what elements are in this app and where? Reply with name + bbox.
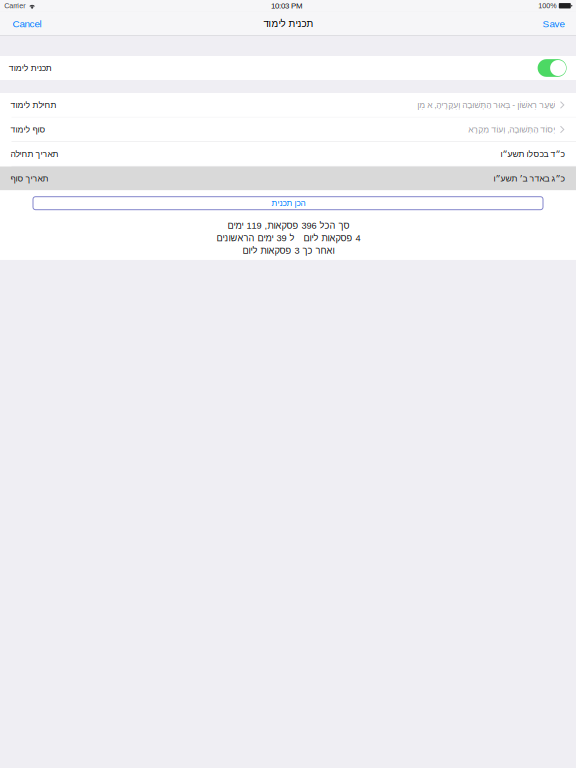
button[interactable]: סוף לימוד — [0, 117, 576, 141]
staticText: Carrier — [4, 2, 25, 10]
staticText: סוף לימוד — [10, 125, 45, 134]
staticText: הכן תכנית — [271, 199, 305, 208]
button[interactable]: תחילת לימוד — [0, 93, 576, 117]
button[interactable]: הכן תכנית — [0, 190, 576, 214]
button[interactable]: Cancel — [0, 11, 54, 36]
staticText: ואחר כך 3 פסקאות ליום — [242, 245, 334, 256]
staticText: Save — [542, 18, 564, 29]
staticText: כ״ג באדר ב׳ תשע״ו — [493, 174, 564, 183]
staticText: Cancel — [12, 18, 41, 29]
staticText: 100% — [538, 2, 556, 10]
staticText: יְסוֹד הַתְּשׁוּבָה, וְעוֹד מִקְרָא — [468, 125, 555, 134]
staticText: שַׁעַר רִאשׁוֹן - בְּאוּר הַתְּשׁוּבָה ו… — [417, 100, 555, 110]
staticText: 4 פסקאות ליום ל 39 ימים הראשונים — [216, 233, 360, 243]
staticText: תחילת לימוד — [10, 100, 56, 110]
button[interactable]: Save — [531, 11, 576, 36]
staticText: סך הכל 396 פסקאות, 119 ימים — [227, 220, 349, 231]
staticText: תכנית לימוד — [263, 18, 313, 29]
staticText: כ״ד בכסלו תשע״ו — [500, 149, 564, 159]
button[interactable]: תאריך תחילה — [0, 142, 576, 166]
staticText: תאריך סוף — [10, 174, 48, 183]
staticText: תכנית לימוד — [8, 63, 51, 73]
staticText: 10:03 PM — [271, 1, 303, 10]
staticText: תאריך תחילה — [10, 149, 58, 159]
button[interactable]: תאריך סוף — [0, 166, 576, 190]
